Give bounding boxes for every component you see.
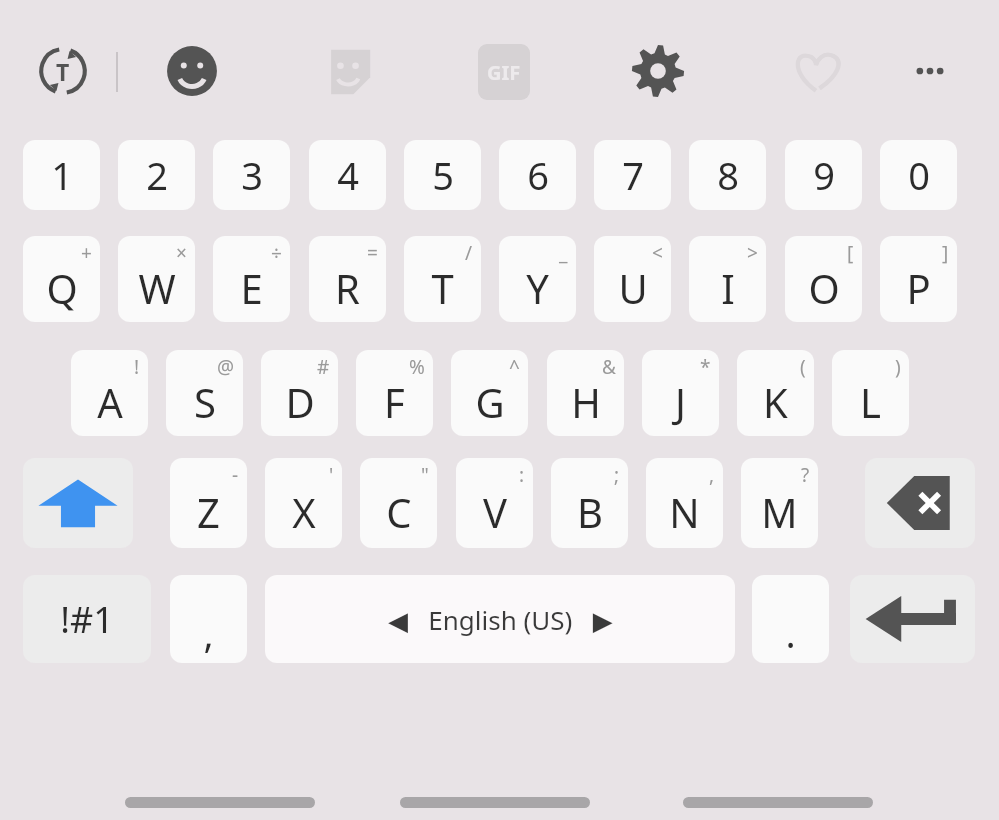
staticText: F [384, 375, 405, 429]
staticText: 3 [241, 149, 263, 201]
staticText: = [367, 240, 378, 266]
button[interactable]: T [404, 236, 481, 322]
button[interactable]: 0 [880, 140, 957, 210]
button[interactable]: N [646, 458, 723, 548]
button[interactable]: L [832, 350, 909, 436]
button[interactable]: Settings [629, 42, 687, 100]
button[interactable]: ◀ English (US) ▶ [265, 575, 735, 663]
staticText: % [409, 354, 425, 380]
button[interactable]: . [752, 575, 829, 663]
button[interactable]: GIF [476, 42, 532, 102]
button[interactable]: Enter [850, 575, 975, 663]
button[interactable]: X [265, 458, 342, 548]
staticText: Q [46, 261, 78, 315]
staticText: K [763, 375, 788, 429]
staticText: Z [197, 485, 220, 539]
button[interactable]: 8 [689, 140, 766, 210]
staticText: 6 [527, 149, 549, 201]
button[interactable]: M [741, 458, 818, 548]
button[interactable]: W [118, 236, 195, 322]
button[interactable]: R [309, 236, 386, 322]
staticText: G [475, 375, 505, 429]
button[interactable]: G [451, 350, 528, 436]
staticText: M [761, 485, 798, 539]
staticText: ÷ [271, 240, 282, 266]
button[interactable]: H [547, 350, 624, 436]
staticText: T [56, 56, 70, 87]
staticText: < [652, 240, 663, 266]
button[interactable]: 3 [213, 140, 290, 210]
button[interactable]: Z [170, 458, 247, 548]
staticText: * [700, 354, 711, 380]
button[interactable]: I [689, 236, 766, 322]
staticText: X [292, 485, 316, 539]
button[interactable]: E [213, 236, 290, 322]
staticText: E [240, 261, 263, 315]
button[interactable]: Stickers [318, 42, 378, 102]
staticText: 8 [717, 149, 739, 201]
staticText: 0 [908, 149, 930, 201]
staticText: L [860, 375, 881, 429]
staticText: T [431, 261, 454, 315]
button[interactable]: , [170, 575, 247, 663]
staticText: C [386, 485, 412, 539]
staticText: 1 [51, 149, 73, 201]
staticText: O [808, 261, 840, 315]
staticText: B [577, 485, 603, 539]
staticText: _ [559, 240, 568, 266]
button[interactable]: More options [901, 42, 959, 100]
staticText: - [232, 462, 239, 488]
button[interactable]: Shift [23, 458, 133, 548]
staticText: J [675, 375, 686, 429]
button[interactable]: U [594, 236, 671, 322]
button[interactable]: B [551, 458, 628, 548]
button[interactable]: D [261, 350, 338, 436]
button[interactable]: O [785, 236, 862, 322]
button[interactable]: 1 [23, 140, 100, 210]
button[interactable]: Y [499, 236, 576, 322]
button[interactable]: Q [23, 236, 100, 322]
staticText: D [285, 375, 315, 429]
button[interactable]: 9 [785, 140, 862, 210]
button[interactable]: C [360, 458, 437, 548]
button[interactable]: K [737, 350, 814, 436]
staticText: ^ [509, 354, 520, 380]
staticText: / [465, 240, 473, 266]
staticText: : [519, 462, 525, 488]
staticText: ( [800, 354, 806, 380]
staticText: + [81, 240, 92, 266]
button[interactable]: J [642, 350, 719, 436]
button[interactable]: P [880, 236, 957, 322]
button[interactable]: S [166, 350, 243, 436]
button[interactable]: Backspace [865, 458, 975, 548]
button[interactable]: V [456, 458, 533, 548]
staticText: !#1 [60, 595, 114, 644]
staticText: S [194, 375, 216, 429]
staticText: ) [895, 354, 901, 380]
staticText: ' [329, 462, 334, 488]
staticText: A [97, 375, 123, 429]
staticText: . [785, 607, 796, 659]
button[interactable]: Translate [30, 38, 96, 104]
staticText: , [203, 607, 214, 659]
staticText: 9 [813, 149, 835, 201]
staticText: ; [614, 462, 620, 488]
button[interactable]: 4 [309, 140, 386, 210]
button[interactable]: 2 [118, 140, 195, 210]
staticText: @ [217, 354, 235, 380]
button[interactable]: A [71, 350, 148, 436]
staticText: U [618, 261, 648, 315]
button[interactable]: F [356, 350, 433, 436]
staticText: ! [134, 354, 140, 380]
button[interactable]: 7 [594, 140, 671, 210]
button[interactable]: Favorites [787, 42, 845, 100]
staticText: 7 [622, 149, 644, 201]
staticText: 2 [146, 149, 168, 201]
button[interactable]: 5 [404, 140, 481, 210]
staticText: V [483, 485, 507, 539]
button[interactable]: !#1 [23, 575, 151, 663]
staticText: GIF [487, 59, 521, 86]
button[interactable]: 6 [499, 140, 576, 210]
button[interactable]: Emoji [163, 42, 221, 100]
staticText: I [721, 261, 735, 315]
